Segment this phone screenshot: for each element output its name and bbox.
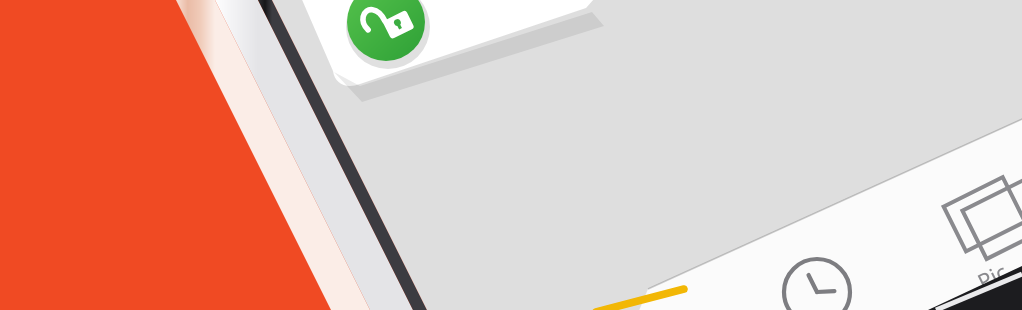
- button[interactable]: Pictures: [945, 180, 1022, 290]
- button[interactable]: Unlock: [340, 0, 432, 62]
- button[interactable]: Recent: [780, 255, 856, 310]
